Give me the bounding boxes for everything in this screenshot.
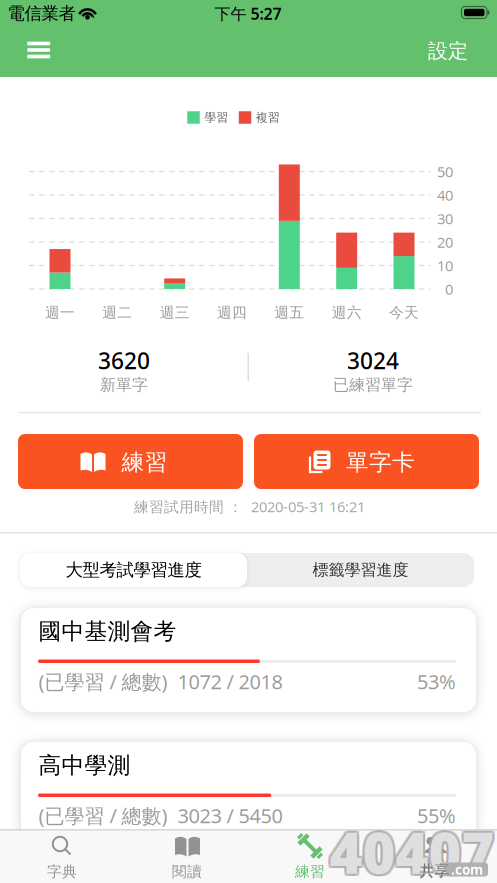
staticText: 練習試用時間 ： 2020-05-31 16:21 xyxy=(134,497,365,516)
staticText: 週六 xyxy=(332,303,362,321)
staticText: 複習 xyxy=(256,110,280,125)
staticText: (已學習 / 總數) 3023 / 5450 xyxy=(38,802,282,829)
button[interactable]: 單字卡 xyxy=(254,434,479,489)
button[interactable]: 共享 xyxy=(403,830,465,883)
staticText: 0 xyxy=(445,279,453,299)
staticText: 10 xyxy=(437,256,453,275)
staticText: 40407 xyxy=(327,817,492,883)
staticText: 55% xyxy=(417,802,456,829)
button[interactable]: 高中學測 xyxy=(20,741,476,846)
staticText: 新單字 xyxy=(100,375,148,395)
staticText: 40407 xyxy=(329,815,494,883)
staticText: 30 xyxy=(437,209,453,228)
staticText: 閱讀 xyxy=(172,862,202,880)
staticText: 練習 xyxy=(121,449,167,476)
button[interactable]: 練習 xyxy=(18,434,243,489)
staticText: 單字卡 xyxy=(346,449,415,476)
staticText: 53% xyxy=(417,668,456,695)
button[interactable]: 設定 xyxy=(428,39,468,63)
staticText: 3024 xyxy=(347,345,399,375)
staticText: 高中學測 xyxy=(38,752,130,779)
staticText: 大型考試學習進度 xyxy=(65,559,201,581)
staticText: 40407 xyxy=(331,813,496,883)
staticText: 40407 xyxy=(329,815,494,883)
staticText: 週二 xyxy=(102,303,132,321)
staticText: 週四 xyxy=(217,303,247,321)
staticText: 40407 xyxy=(329,817,494,883)
staticText: .com xyxy=(451,861,483,878)
staticText: 已練習單字 xyxy=(333,375,413,395)
staticText: 3620 xyxy=(98,345,150,375)
staticText: (已學習 / 總數) 1072 / 2018 xyxy=(38,668,282,695)
staticText: 設定 xyxy=(428,39,468,63)
staticText: 電信業者 xyxy=(7,3,75,24)
staticText: 40407 xyxy=(327,813,492,883)
staticText: 下午 5:27 xyxy=(214,3,281,24)
button[interactable]: Menu xyxy=(27,42,50,58)
button[interactable]: 練習 xyxy=(279,830,341,883)
staticText: 週三 xyxy=(160,303,190,321)
button[interactable]: 大型考試學習進度 xyxy=(20,553,247,587)
staticText: 40407 xyxy=(331,817,496,883)
staticText: 共享 xyxy=(419,862,449,880)
staticText: 週五 xyxy=(274,303,304,321)
staticText: 50 xyxy=(437,162,453,181)
staticText: 字典 xyxy=(47,862,77,880)
staticText: 國中基測會考 xyxy=(38,618,176,645)
button[interactable]: 國中基測會考 xyxy=(20,607,476,712)
staticText: 40407 xyxy=(331,815,496,883)
staticText: 練習 xyxy=(295,862,325,880)
button[interactable]: 標籤學習進度 xyxy=(247,553,474,587)
staticText: 40 xyxy=(437,185,453,205)
staticText: 共享 xyxy=(419,861,449,879)
staticText: 40407 xyxy=(327,815,492,883)
button[interactable]: 字典 xyxy=(31,830,93,883)
staticText: 40407 xyxy=(329,813,494,883)
staticText: 今天 xyxy=(389,303,419,321)
staticText: 標籤學習進度 xyxy=(312,560,408,580)
staticText: 週一 xyxy=(45,303,75,321)
staticText: 20 xyxy=(437,232,453,252)
staticText: 學習 xyxy=(204,110,228,125)
button[interactable]: 閱讀 xyxy=(156,830,218,883)
